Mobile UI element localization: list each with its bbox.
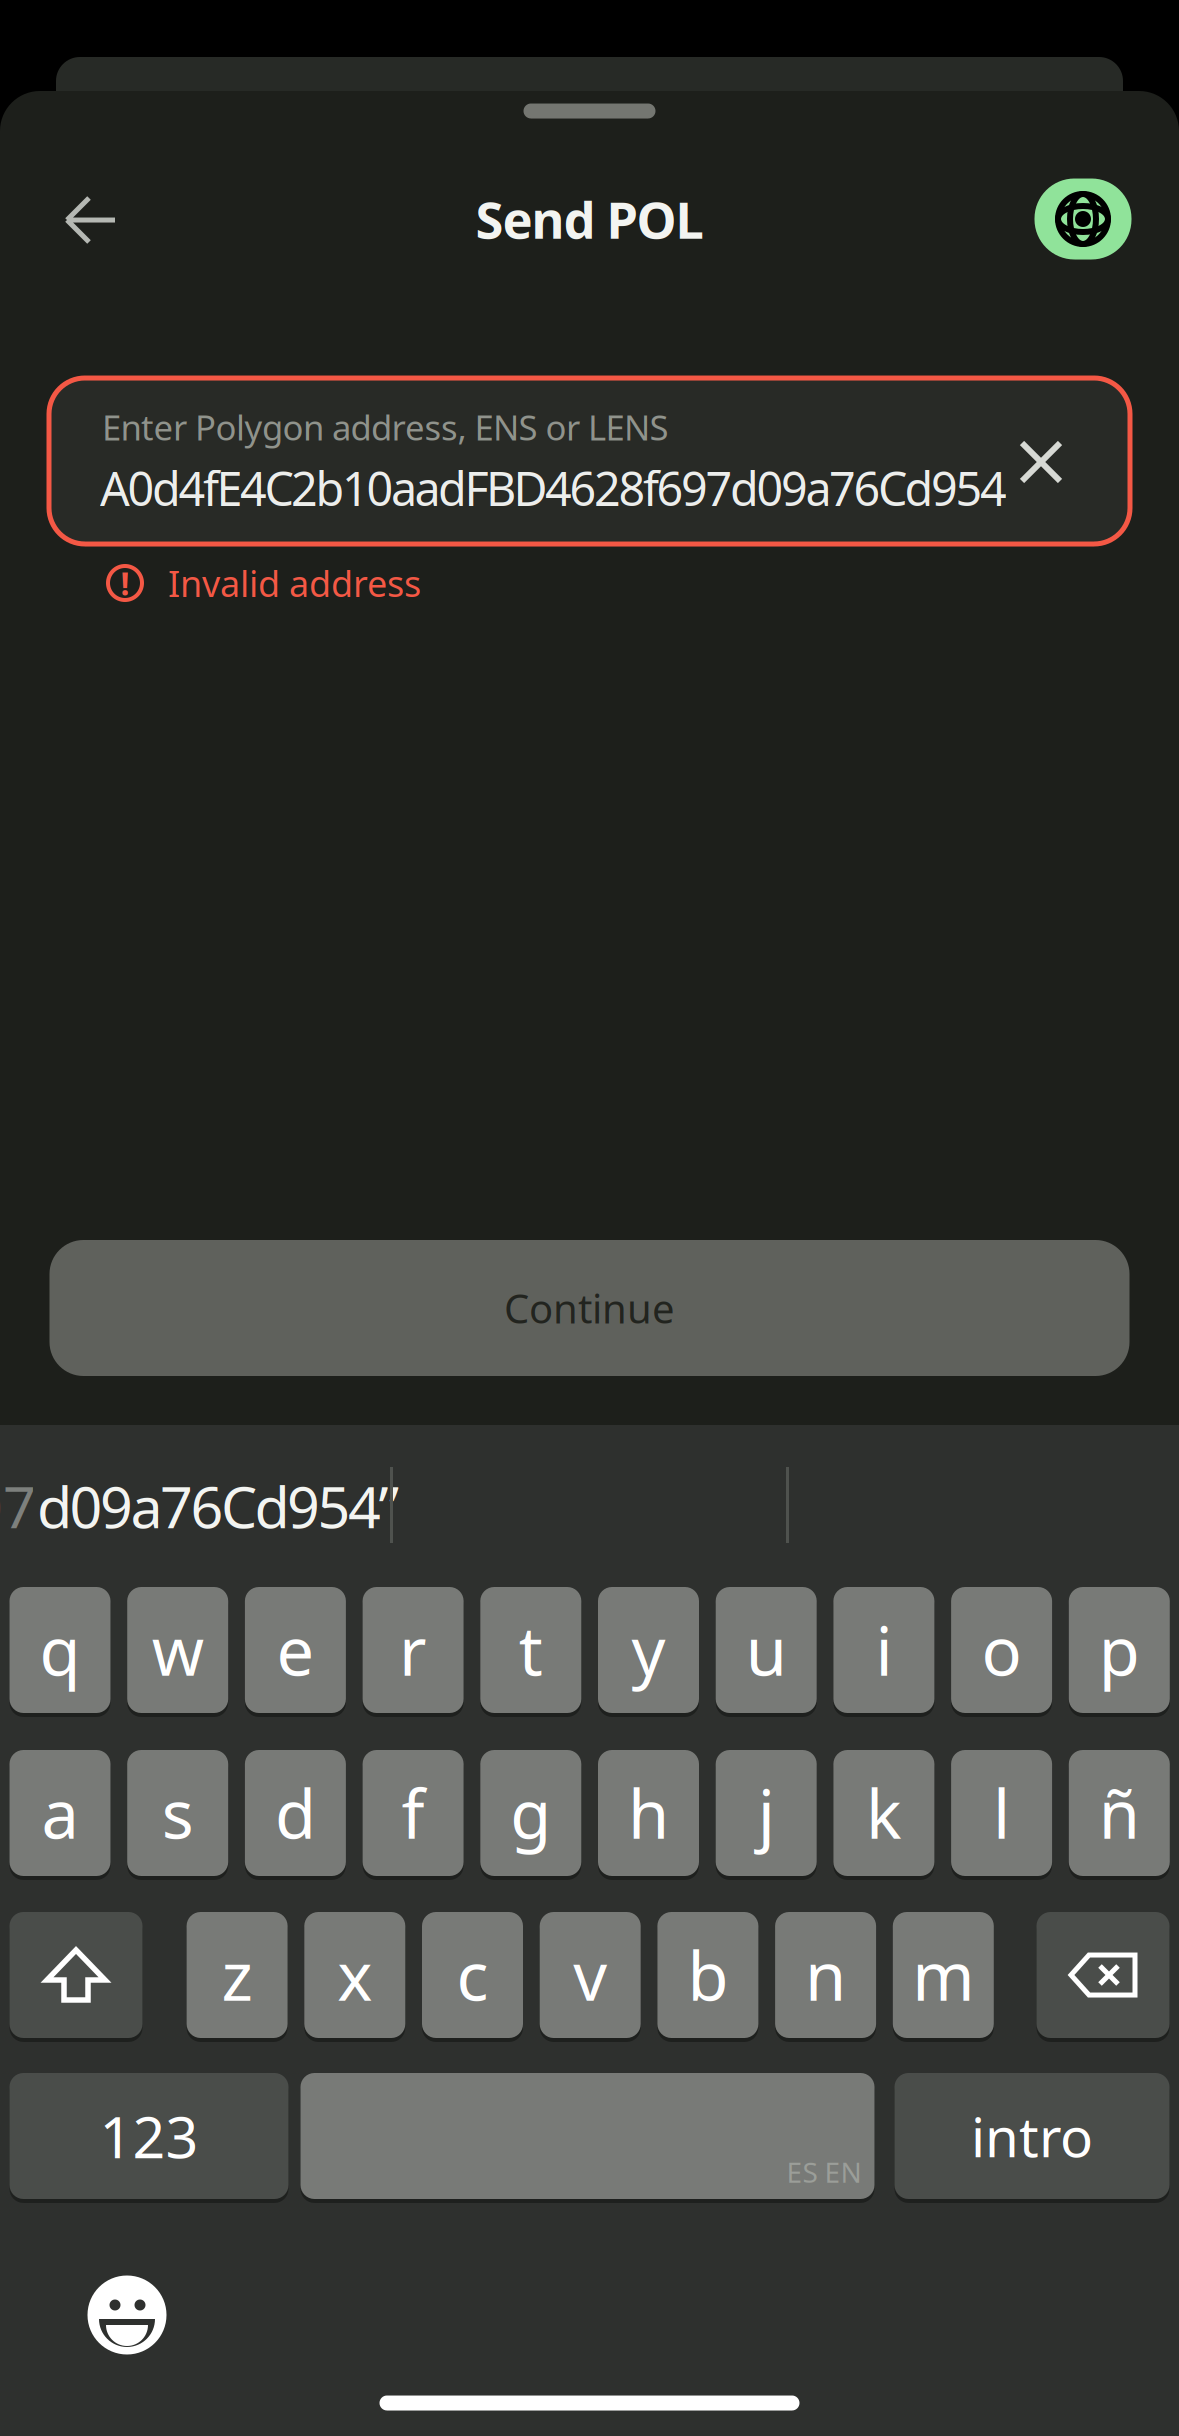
staticText: o: [982, 1606, 1022, 1694]
staticText: e: [276, 1606, 314, 1694]
button[interactable]: g: [480, 1750, 581, 1876]
staticText: intro: [971, 2100, 1093, 2172]
button[interactable]: t: [480, 1587, 581, 1713]
staticText: Invalid address: [168, 559, 421, 607]
button[interactable]: 123: [9, 2073, 288, 2199]
staticText: !: [120, 562, 129, 604]
staticText: s: [162, 1769, 194, 1857]
staticText: q: [39, 1606, 80, 1694]
staticText: i: [875, 1606, 892, 1694]
button[interactable]: r: [363, 1587, 464, 1713]
button[interactable]: w: [127, 1587, 228, 1713]
staticText: z: [222, 1931, 253, 2019]
button[interactable]: Delete: [1036, 1912, 1169, 2038]
button[interactable]: o: [951, 1587, 1052, 1713]
staticText: t: [519, 1606, 543, 1694]
staticText: n: [805, 1931, 846, 2019]
button[interactable]: j: [716, 1750, 817, 1876]
button[interactable]: Back: [51, 180, 131, 260]
staticText: ñ: [1099, 1769, 1140, 1857]
staticText: g: [510, 1769, 551, 1857]
staticText: m: [912, 1931, 974, 2019]
button[interactable]: e: [245, 1587, 346, 1713]
staticText: 123: [99, 2098, 198, 2174]
staticText: Continue: [504, 1281, 675, 1334]
button[interactable]: v: [540, 1912, 641, 2038]
button[interactable]: Clear text: [1011, 432, 1071, 492]
button[interactable]: b: [657, 1912, 758, 2038]
staticText: f: [402, 1769, 425, 1857]
staticText: x: [337, 1931, 372, 2019]
staticText: Send POL: [475, 185, 703, 253]
staticText: p: [1099, 1606, 1140, 1694]
staticText: d09a76Cd954”: [37, 1468, 399, 1544]
button[interactable]: k: [833, 1750, 934, 1876]
button[interactable]: Emoji: [82, 2270, 172, 2360]
staticText: h: [628, 1769, 669, 1857]
button[interactable]: u: [716, 1587, 817, 1713]
staticText: u: [746, 1606, 787, 1694]
button[interactable]: s: [127, 1750, 228, 1876]
staticText: r: [399, 1606, 427, 1694]
staticText: v: [573, 1931, 607, 2019]
button[interactable]: x: [304, 1912, 405, 2038]
staticText: w: [152, 1606, 204, 1694]
button[interactable]: f: [363, 1750, 464, 1876]
button[interactable]: p: [1069, 1587, 1170, 1713]
button[interactable]: Enter Polygon address, ENS or LENS: [49, 378, 1130, 544]
button[interactable]: a: [9, 1750, 110, 1876]
button[interactable]: i: [833, 1587, 934, 1713]
button[interactable]: c: [422, 1912, 523, 2038]
button[interactable]: Network: [1034, 178, 1131, 259]
staticText: Enter Polygon address, ENS or LENS: [102, 404, 668, 450]
button[interactable]: m: [893, 1912, 994, 2038]
staticText: y: [631, 1606, 665, 1694]
staticText: ES EN: [786, 2153, 861, 2191]
button[interactable]: Continue: [49, 1240, 1129, 1376]
button[interactable]: intro: [894, 2073, 1169, 2199]
staticText: d: [275, 1769, 316, 1857]
button[interactable]: y: [598, 1587, 699, 1713]
button[interactable]: n: [775, 1912, 876, 2038]
button[interactable]: d: [245, 1750, 346, 1876]
staticText: k: [866, 1769, 902, 1857]
staticText: A0d4fE4C2b10aadFBD4628f697d09a76Cd954: [100, 457, 1007, 519]
button[interactable]: Shift: [9, 1912, 142, 2038]
button[interactable]: q: [9, 1587, 110, 1713]
staticText: l: [993, 1769, 1010, 1857]
button[interactable]: Space: [300, 2073, 874, 2199]
button[interactable]: d09a76Cd954”: [37, 1468, 597, 1544]
button[interactable]: z: [187, 1912, 288, 2038]
staticText: j: [758, 1769, 775, 1857]
staticText: b: [687, 1931, 728, 2019]
button[interactable]: h: [598, 1750, 699, 1876]
staticText: a: [41, 1769, 78, 1857]
button[interactable]: ñ: [1069, 1750, 1170, 1876]
staticText: 07: [0, 1468, 36, 1544]
staticText: c: [456, 1931, 488, 2019]
button[interactable]: l: [951, 1750, 1052, 1876]
